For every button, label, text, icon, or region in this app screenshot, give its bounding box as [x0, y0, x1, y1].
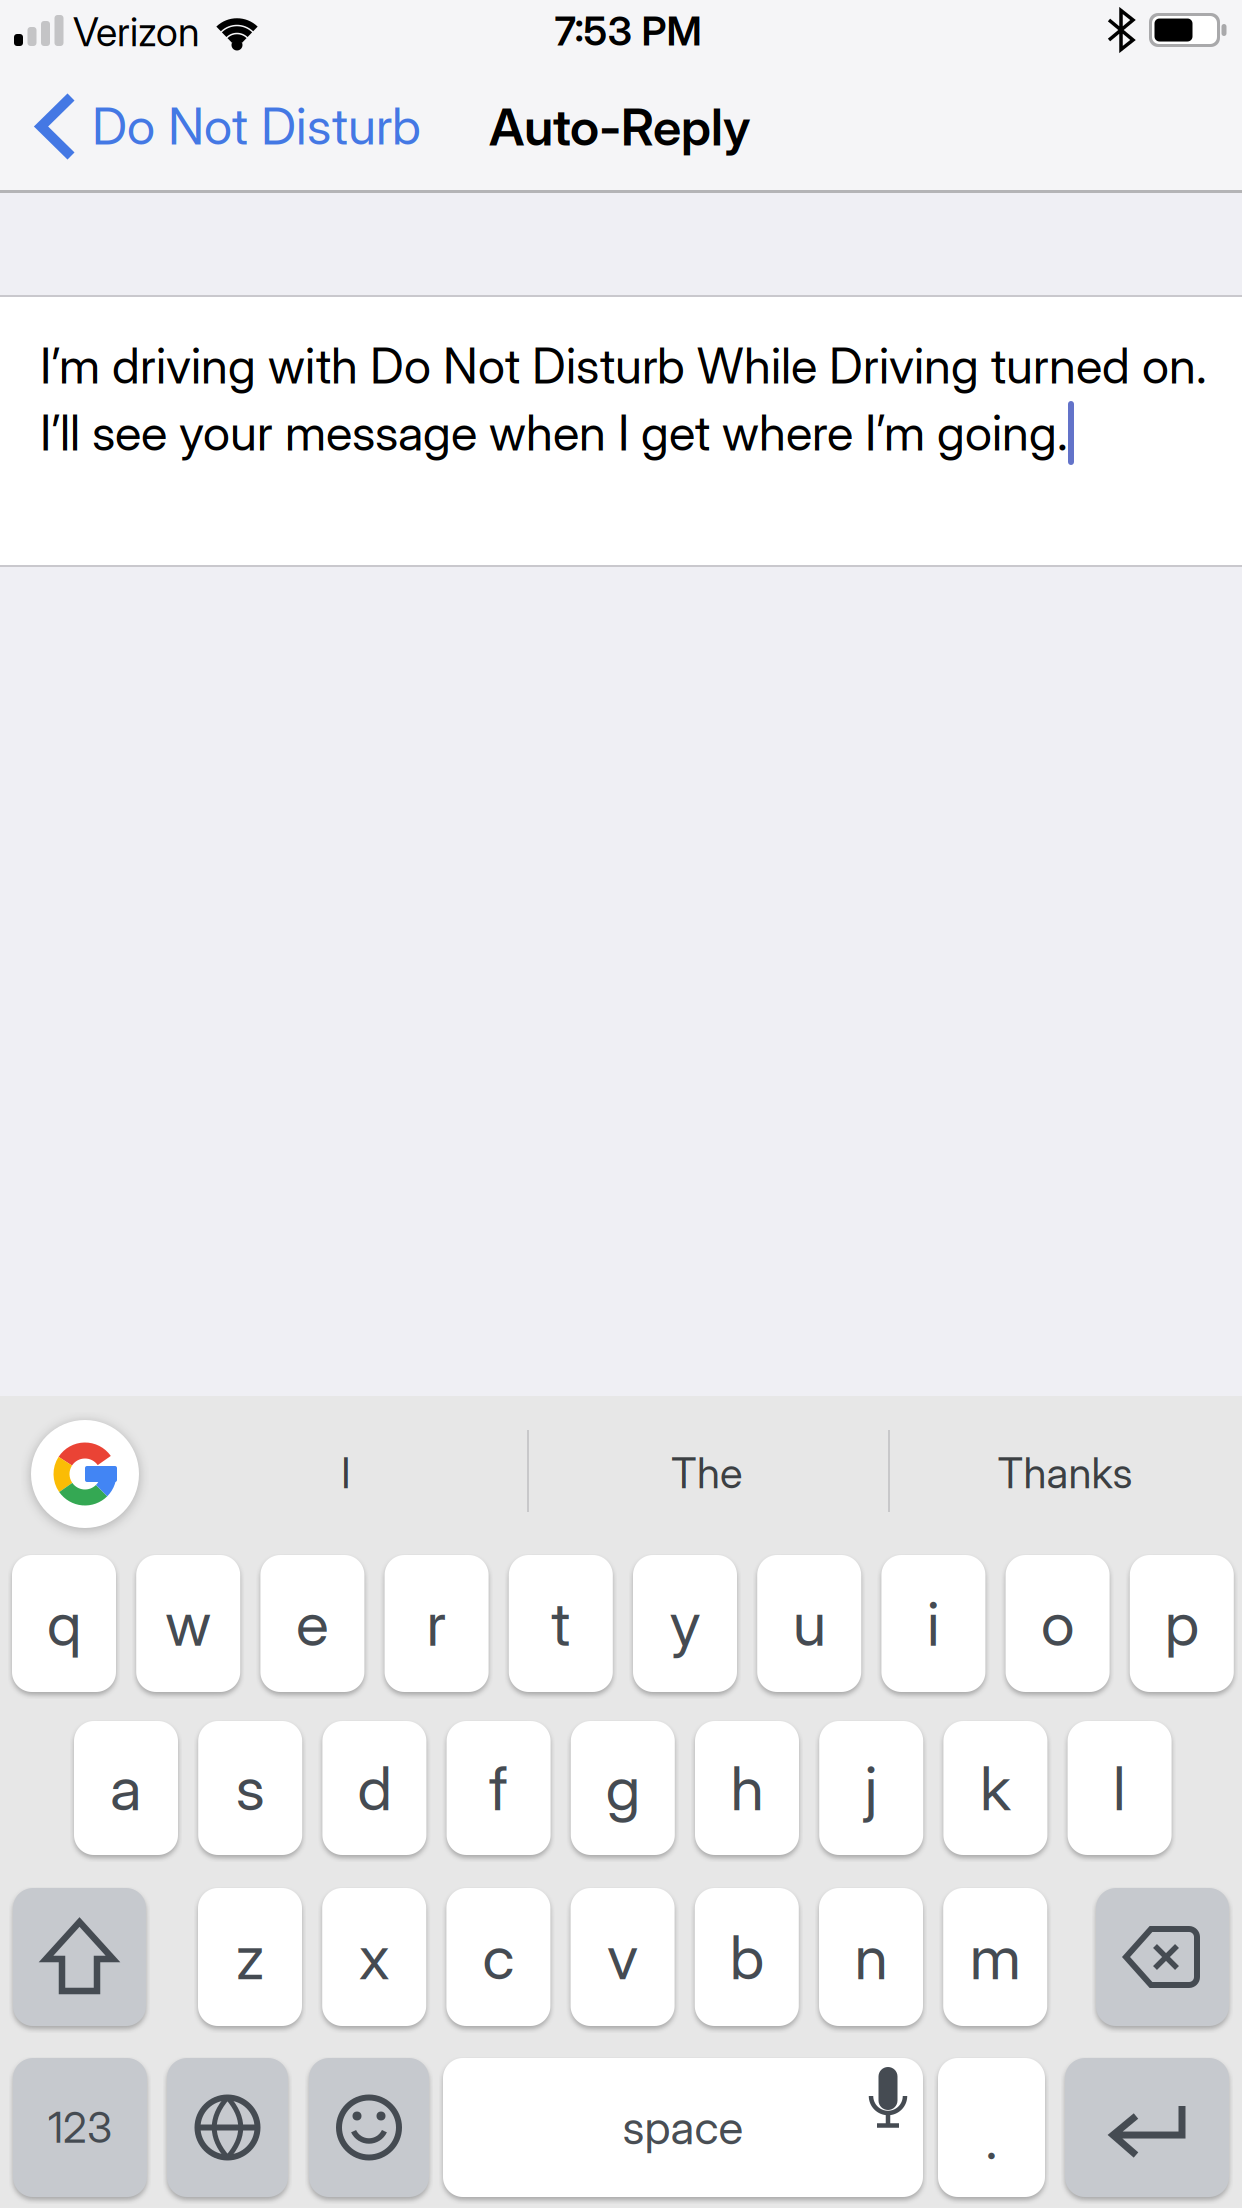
staticText: I’ll see your message when I get where I…: [40, 403, 1068, 462]
button[interactable]: [309, 2058, 429, 2197]
button[interactable]: u: [757, 1555, 861, 1692]
button[interactable]: f: [447, 1721, 551, 1855]
staticText: l: [1113, 1751, 1126, 1825]
button[interactable]: n: [819, 1888, 923, 2026]
button[interactable]: s: [198, 1721, 302, 1855]
button[interactable]: o: [1006, 1555, 1110, 1692]
staticText: The: [671, 1448, 743, 1498]
button[interactable]: e: [260, 1555, 364, 1692]
button[interactable]: v: [571, 1888, 675, 2026]
staticText: g: [606, 1751, 640, 1825]
button[interactable]: [1096, 1888, 1229, 2026]
staticText: h: [730, 1751, 763, 1825]
staticText: s: [236, 1751, 265, 1825]
staticText: e: [296, 1587, 329, 1660]
button[interactable]: a: [74, 1721, 178, 1855]
button[interactable]: m: [943, 1888, 1047, 2026]
staticText: u: [793, 1587, 826, 1660]
button[interactable]: i: [881, 1555, 985, 1692]
staticText: c: [482, 1920, 514, 1994]
button[interactable]: h: [695, 1721, 799, 1855]
staticText: z: [235, 1920, 264, 1994]
button[interactable]: k: [943, 1721, 1047, 1855]
staticText: Auto-Reply: [489, 96, 751, 158]
button[interactable]: y: [633, 1555, 737, 1692]
button[interactable]: j: [819, 1721, 923, 1855]
staticText: Do Not Disturb: [92, 95, 421, 157]
staticText: space: [622, 2100, 743, 2155]
button[interactable]: I: [176, 1413, 516, 1533]
button[interactable]: 123: [13, 2058, 147, 2197]
staticText: k: [980, 1751, 1011, 1825]
button[interactable]: q: [12, 1555, 116, 1692]
button[interactable]: [13, 1888, 146, 2026]
button[interactable]: w: [136, 1555, 240, 1692]
button[interactable]: z: [198, 1888, 302, 2026]
staticText: o: [1041, 1587, 1074, 1660]
button[interactable]: g: [571, 1721, 675, 1855]
button[interactable]: [167, 2058, 288, 2197]
button[interactable]: space: [443, 2058, 923, 2197]
button[interactable]: [31, 1420, 139, 1528]
button[interactable]: p: [1130, 1555, 1234, 1692]
button[interactable]: x: [322, 1888, 426, 2026]
staticText: d: [357, 1751, 391, 1825]
staticText: j: [865, 1751, 878, 1825]
staticText: p: [1165, 1587, 1199, 1660]
button[interactable]: The: [537, 1413, 877, 1533]
button[interactable]: l: [1068, 1721, 1172, 1855]
staticText: Verizon: [73, 8, 200, 56]
button[interactable]: r: [385, 1555, 489, 1692]
button[interactable]: Thanks: [895, 1413, 1235, 1533]
staticText: 7:53 PM: [554, 7, 701, 55]
staticText: y: [669, 1587, 700, 1660]
staticText: r: [427, 1587, 447, 1660]
staticText: q: [47, 1587, 81, 1660]
button[interactable]: d: [322, 1721, 426, 1855]
staticText: i: [927, 1587, 940, 1660]
staticText: v: [607, 1920, 638, 1994]
staticText: I’m driving with Do Not Disturb While Dr…: [40, 336, 1207, 395]
staticText: m: [970, 1920, 1021, 1994]
button[interactable]: t: [509, 1555, 613, 1692]
button[interactable]: c: [446, 1888, 550, 2026]
staticText: w: [165, 1587, 211, 1660]
button[interactable]: b: [695, 1888, 799, 2026]
staticText: b: [730, 1920, 764, 1994]
button[interactable]: .: [938, 2058, 1045, 2197]
staticText: Thanks: [997, 1448, 1132, 1498]
staticText: a: [110, 1751, 142, 1825]
staticText: I: [341, 1448, 351, 1498]
staticText: n: [854, 1920, 887, 1994]
staticText: .: [985, 2107, 997, 2172]
staticText: t: [551, 1587, 570, 1660]
button[interactable]: Do Not Disturb: [0, 0, 450, 190]
staticText: f: [489, 1751, 508, 1825]
staticText: 123: [48, 2102, 112, 2153]
staticText: x: [359, 1920, 390, 1994]
button[interactable]: [1065, 2058, 1229, 2197]
